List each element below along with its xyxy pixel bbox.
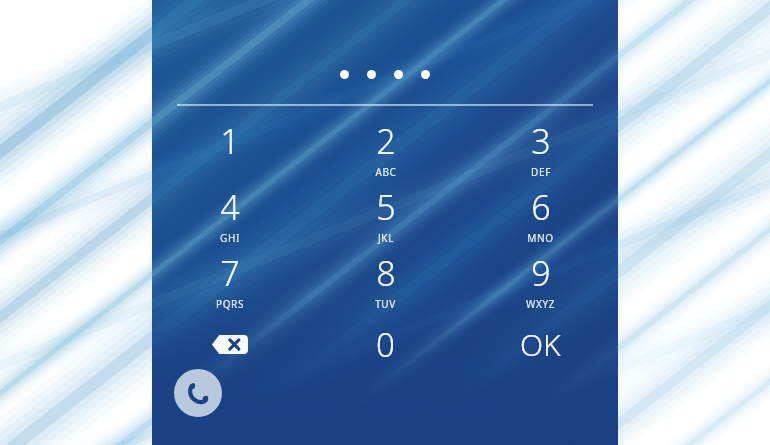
staticText: 5 (376, 184, 396, 230)
button[interactable]: 1 (152, 113, 308, 179)
button[interactable]: OK (463, 311, 618, 377)
staticText: 6 (531, 184, 551, 230)
staticText: 8 (376, 250, 396, 296)
button[interactable]: 0 (308, 311, 463, 377)
staticText: 4 (220, 184, 240, 230)
staticText: 9 (531, 250, 551, 296)
staticText: GHI (220, 231, 240, 245)
button[interactable]: 6 (463, 179, 618, 245)
button[interactable]: 3 (463, 113, 618, 179)
staticText: MNO (527, 231, 554, 245)
button[interactable]: Emergency call (174, 369, 222, 417)
staticText: DEF (531, 165, 551, 179)
staticText: ABC (375, 165, 397, 179)
staticText: WXYZ (526, 297, 555, 311)
staticText: 0 (376, 322, 395, 367)
staticText: PQRS (216, 297, 244, 311)
button[interactable]: Backspace (152, 311, 308, 377)
button[interactable]: 4 (152, 179, 308, 245)
staticText: 7 (220, 250, 240, 296)
button[interactable]: 5 (308, 179, 463, 245)
staticText: 2 (376, 118, 396, 164)
staticText: TUV (375, 297, 396, 311)
staticText: 1 (220, 118, 240, 164)
button[interactable]: 2 (308, 113, 463, 179)
staticText: JKL (378, 231, 394, 245)
button[interactable]: 9 (463, 245, 618, 311)
button[interactable]: 7 (152, 245, 308, 311)
staticText: 3 (531, 118, 551, 164)
staticText: OK (520, 324, 561, 365)
button[interactable]: 8 (308, 245, 463, 311)
